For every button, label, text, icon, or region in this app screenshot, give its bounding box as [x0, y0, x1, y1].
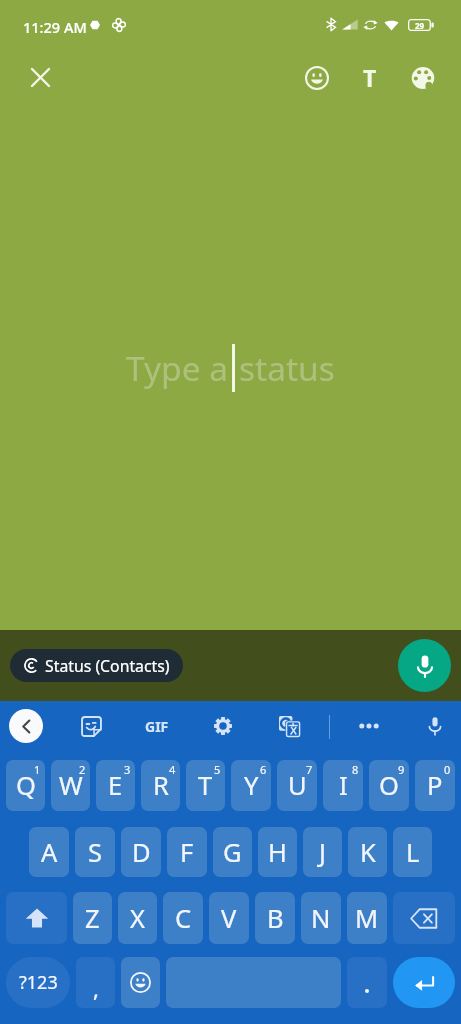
- button[interactable]: Z: [73, 892, 112, 944]
- button[interactable]: A: [29, 827, 69, 877]
- staticText: C: [175, 901, 192, 936]
- staticText: Q: [16, 768, 36, 803]
- staticText: T: [198, 768, 213, 803]
- staticText: W: [59, 768, 83, 803]
- button[interactable]: T: [186, 760, 225, 811]
- staticText: Z: [85, 901, 100, 936]
- staticText: I: [339, 768, 348, 803]
- staticText: T: [363, 62, 377, 93]
- staticText: N: [311, 901, 331, 936]
- button[interactable]: Status (Contacts): [10, 649, 183, 682]
- staticText: D: [132, 835, 151, 870]
- button[interactable]: X: [118, 892, 157, 944]
- button[interactable]: J: [303, 827, 342, 877]
- button[interactable]: V: [209, 892, 249, 944]
- staticText: 11:29 AM: [23, 17, 87, 37]
- button[interactable]: Stickers: [71, 706, 111, 746]
- button[interactable]: Translate: [269, 706, 309, 746]
- staticText: 1: [34, 762, 41, 777]
- staticText: E: [108, 768, 123, 803]
- button[interactable]: Enter: [393, 957, 455, 1008]
- staticText: H: [268, 835, 287, 870]
- staticText: 8: [352, 762, 359, 777]
- button[interactable]: Settings: [203, 706, 243, 746]
- staticText: status: [239, 345, 335, 391]
- button[interactable]: Background colour: [400, 55, 445, 100]
- button[interactable]: [347, 957, 387, 1008]
- staticText: P: [427, 768, 443, 803]
- button[interactable]: G: [213, 827, 252, 877]
- button[interactable]: L: [393, 827, 432, 877]
- staticText: Type a: [126, 345, 229, 391]
- staticText: 9: [398, 762, 405, 777]
- staticText: ?123: [19, 970, 58, 995]
- button[interactable]: B: [255, 892, 295, 944]
- staticText: A: [41, 835, 58, 870]
- button[interactable]: H: [258, 827, 297, 877]
- staticText: U: [288, 768, 307, 803]
- staticText: 5: [214, 762, 221, 777]
- staticText: Status (Contacts): [45, 655, 170, 677]
- button[interactable]: D: [121, 827, 161, 877]
- button[interactable]: GIF: [137, 706, 177, 746]
- button[interactable]: E: [96, 760, 135, 811]
- button[interactable]: R: [141, 760, 180, 811]
- staticText: B: [267, 901, 284, 936]
- button[interactable]: C: [163, 892, 203, 944]
- staticText: V: [221, 901, 237, 936]
- button[interactable]: Backspace: [393, 892, 455, 944]
- button[interactable]: O: [369, 760, 409, 811]
- staticText: X: [130, 901, 145, 936]
- staticText: G: [223, 835, 242, 870]
- button[interactable]: K: [348, 827, 387, 877]
- staticText: O: [379, 768, 399, 803]
- button[interactable]: N: [301, 892, 341, 944]
- button[interactable]: Voice input: [415, 706, 455, 746]
- button[interactable]: Emoji: [294, 55, 339, 100]
- staticText: J: [319, 835, 326, 870]
- staticText: Y: [244, 768, 259, 803]
- staticText: 2: [79, 762, 86, 777]
- button[interactable]: Emoji: [121, 957, 160, 1008]
- button[interactable]: ?123: [6, 957, 70, 1008]
- staticText: 29: [415, 20, 425, 31]
- button[interactable]: More options: [349, 706, 389, 746]
- button[interactable]: F: [167, 827, 207, 877]
- button[interactable]: W: [51, 760, 90, 811]
- staticText: S: [88, 835, 102, 870]
- staticText: GIF: [145, 717, 169, 736]
- staticText: F: [180, 835, 194, 870]
- button[interactable]: Back: [9, 709, 43, 743]
- button[interactable]: Shift: [6, 892, 67, 944]
- button[interactable]: Y: [231, 760, 271, 811]
- button[interactable]: U: [277, 760, 317, 811]
- staticText: 3: [124, 762, 131, 777]
- button[interactable]: I: [323, 760, 363, 811]
- staticText: 6: [260, 762, 267, 777]
- staticText: ,: [93, 973, 99, 1003]
- button[interactable]: M: [347, 892, 387, 944]
- staticText: L: [406, 835, 420, 870]
- button[interactable]: S: [75, 827, 115, 877]
- button[interactable]: Text style: [347, 55, 392, 100]
- button[interactable]: P: [415, 760, 455, 811]
- button[interactable]: Q: [6, 760, 45, 811]
- staticText: 0: [444, 762, 451, 777]
- button[interactable]: Record voice status: [398, 639, 451, 692]
- staticText: 7: [306, 762, 313, 777]
- staticText: M: [355, 901, 379, 936]
- staticText: R: [153, 768, 169, 803]
- button[interactable]: ,: [76, 957, 115, 1008]
- button[interactable]: Close: [18, 55, 63, 100]
- staticText: K: [360, 835, 376, 870]
- staticText: 4: [169, 762, 176, 777]
